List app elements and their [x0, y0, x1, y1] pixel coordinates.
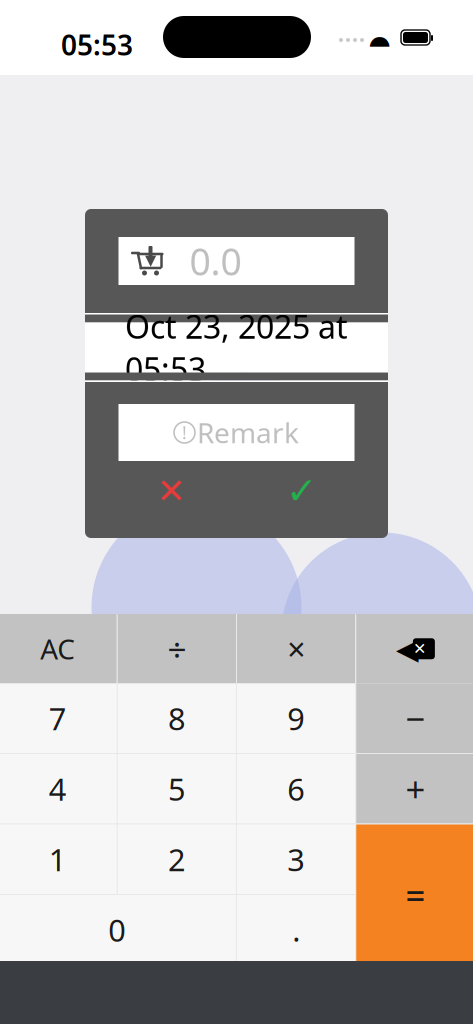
- staticText: ✓: [286, 470, 317, 512]
- staticText: Oct 23, 2025 at 05:53: [125, 305, 348, 390]
- staticText: AC: [40, 630, 75, 667]
- staticText: ✕: [413, 640, 426, 658]
- staticText: Remark: [197, 414, 299, 451]
- button[interactable]: −: [356, 683, 473, 753]
- button[interactable]: 4: [0, 754, 117, 823]
- staticText: 9: [287, 698, 305, 739]
- button[interactable]: 5: [118, 754, 236, 823]
- button[interactable]: 1: [0, 824, 117, 894]
- button[interactable]: ×: [237, 614, 355, 683]
- button[interactable]: 6: [237, 754, 355, 823]
- staticText: 7: [49, 698, 67, 739]
- staticText: −: [405, 695, 425, 741]
- button[interactable]: Delete: [356, 614, 473, 683]
- staticText: ✕: [157, 471, 186, 511]
- staticText: 3: [287, 839, 305, 880]
- staticText: 4: [49, 768, 67, 809]
- button[interactable]: 2: [118, 824, 236, 894]
- button[interactable]: 9: [237, 683, 355, 753]
- staticText: 0: [108, 909, 126, 950]
- staticText: 5: [168, 768, 186, 809]
- button[interactable]: =: [356, 824, 473, 964]
- staticText: 8: [168, 698, 186, 739]
- button[interactable]: ÷: [118, 614, 236, 683]
- button[interactable]: 7: [0, 683, 117, 753]
- staticText: ×: [287, 627, 305, 670]
- staticText: 0.0: [189, 236, 241, 286]
- staticText: ▼: [145, 252, 156, 268]
- button[interactable]: Cancel: [141, 469, 201, 513]
- button[interactable]: 3: [237, 824, 355, 894]
- button[interactable]: Oct 23, 2025 at 05:53: [85, 322, 388, 372]
- staticText: 2: [168, 839, 186, 880]
- staticText: !: [182, 421, 187, 444]
- button[interactable]: .: [237, 895, 355, 964]
- button[interactable]: 0: [0, 895, 236, 964]
- staticText: +: [405, 766, 425, 812]
- button[interactable]: Confirm: [271, 469, 331, 513]
- staticText: =: [405, 871, 425, 917]
- staticText: 05:53: [61, 26, 133, 63]
- button[interactable]: AC: [0, 614, 117, 683]
- staticText: .: [292, 909, 300, 950]
- staticText: ◗: [371, 28, 384, 57]
- staticText: ◀: [396, 632, 419, 665]
- staticText: 6: [287, 768, 305, 809]
- button[interactable]: +: [356, 754, 473, 823]
- staticText: ÷: [167, 627, 186, 671]
- button[interactable]: !: [118, 404, 354, 461]
- button[interactable]: 8: [118, 683, 236, 753]
- staticText: 1: [49, 839, 67, 880]
